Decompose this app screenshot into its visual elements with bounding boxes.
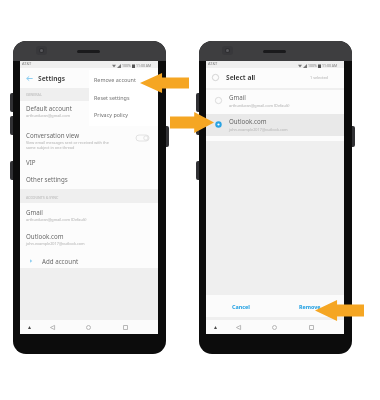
staticText: Outlook.com bbox=[229, 117, 267, 125]
staticText: AT&T bbox=[22, 61, 32, 66]
button[interactable]: Other settings bbox=[20, 172, 158, 188]
button[interactable]: Remove account bbox=[89, 70, 158, 88]
staticText: Add account bbox=[42, 257, 79, 265]
staticText: Privacy policy bbox=[94, 111, 129, 118]
staticText: Outlook.com bbox=[26, 232, 64, 240]
other: Select all bbox=[212, 74, 219, 81]
staticText: ACCOUNTS & SYNC bbox=[26, 195, 59, 200]
button[interactable]: Back bbox=[24, 73, 68, 84]
staticText: 100% bbox=[122, 63, 131, 68]
button[interactable]: Gmail bbox=[206, 89, 344, 111]
button[interactable]: Reset settings bbox=[89, 88, 158, 106]
staticText: Gmail bbox=[26, 208, 43, 216]
staticText: Remove account bbox=[94, 76, 136, 83]
staticText: arthurduran@gmail.com bbox=[26, 113, 70, 118]
button[interactable]: VIP bbox=[20, 155, 158, 171]
staticText: Gmail bbox=[229, 93, 246, 101]
button[interactable]: Back bbox=[232, 321, 245, 333]
other: Conversation view toggle bbox=[136, 135, 149, 141]
staticText: 11:00 AM bbox=[136, 63, 152, 68]
button[interactable]: Add account bbox=[20, 253, 158, 268]
staticText: Select all bbox=[226, 73, 256, 82]
button[interactable]: Home bbox=[268, 321, 281, 333]
button[interactable]: Conversation view bbox=[20, 129, 158, 159]
other: Back bbox=[26, 75, 33, 82]
button[interactable]: Default account bbox=[20, 102, 158, 124]
staticText: Reset settings bbox=[94, 94, 130, 101]
staticText: 100% bbox=[308, 63, 317, 68]
button[interactable]: Outlook.com bbox=[20, 230, 158, 252]
staticText: john.example2017@outlook.com bbox=[229, 127, 288, 132]
staticText: Remove bbox=[299, 303, 321, 310]
staticText: Cancel bbox=[232, 303, 250, 310]
button[interactable]: Recents bbox=[305, 321, 318, 333]
staticText: View email messages sent or received wit… bbox=[26, 140, 109, 150]
button[interactable]: Gmail bbox=[20, 206, 158, 228]
staticText: arthurduran@gmail.com (Default) bbox=[26, 217, 87, 222]
button[interactable]: Remove bbox=[275, 295, 344, 317]
button[interactable]: Cancel bbox=[206, 295, 275, 317]
button[interactable]: Privacy policy bbox=[89, 105, 158, 123]
button[interactable]: Home bbox=[82, 321, 95, 333]
staticText: Default account bbox=[26, 104, 72, 112]
staticText: Other settings bbox=[26, 175, 68, 183]
button[interactable]: Recents bbox=[119, 321, 132, 333]
staticText: Conversation view bbox=[26, 131, 80, 139]
button[interactable]: Back bbox=[46, 321, 59, 333]
staticText: VIP bbox=[26, 158, 36, 166]
staticText: arthurduran@gmail.com (Default) bbox=[229, 103, 290, 108]
staticText: GENERAL bbox=[26, 92, 42, 97]
staticText: john.example2017@outlook.com bbox=[26, 241, 85, 246]
staticText: 11:00 AM bbox=[322, 63, 338, 68]
button[interactable]: Outlook.com bbox=[206, 113, 344, 135]
button[interactable]: Select all bbox=[210, 72, 258, 83]
staticText: AT&T bbox=[208, 61, 218, 66]
staticText: 1 selected bbox=[310, 75, 328, 80]
staticText: Settings bbox=[38, 74, 66, 83]
